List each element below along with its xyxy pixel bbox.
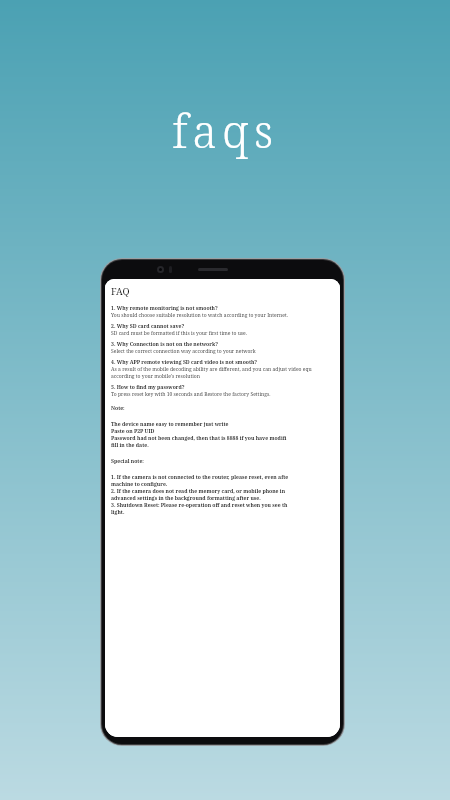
staticText: 4. Why APP remote viewing SD card video …: [111, 359, 258, 366]
staticText: 2. Why SD card cannot save?: [111, 323, 185, 330]
staticText: To press reset key with 10 seconds and R…: [111, 391, 271, 398]
staticText: As a result of the mobile decoding abili…: [111, 366, 312, 373]
staticText: Special note:: [111, 458, 144, 465]
staticText: Password had not been changed, then that…: [111, 435, 287, 442]
staticText: Paste on P2P UID: [111, 428, 155, 435]
staticText: advanced settings in the background form…: [111, 495, 261, 502]
staticText: according to your mobile's resolution: [111, 373, 200, 380]
staticText: 5. How to find my password?: [111, 384, 185, 391]
staticText: 3. Why Connection is not on the network?: [111, 341, 218, 348]
button[interactable]: faqs: [0, 100, 450, 161]
staticText: Select the correct connection way accord…: [111, 348, 256, 355]
staticText: machine to configure.: [111, 481, 168, 488]
staticText: The device name easy to remember just wr…: [111, 421, 229, 428]
staticText: faqs: [0, 100, 450, 161]
staticText: 1. If the camera is not connected to the…: [111, 474, 289, 481]
staticText: SD card must be formatted if this is you…: [111, 330, 247, 337]
staticText: 2. If the camera does not read the memor…: [111, 488, 286, 495]
staticText: FAQ: [111, 285, 130, 298]
staticText: Note:: [111, 405, 125, 412]
staticText: 3. Shutdown Reset: Please re-operation o…: [111, 502, 288, 509]
staticText: 1. Why remote monitoring is not smooth?: [111, 305, 218, 312]
staticText: fill in the date.: [111, 442, 149, 449]
button[interactable]: Phone preview showing FAQ screen: [100, 258, 345, 746]
staticText: light.: [111, 509, 125, 516]
staticText: You should choose suitable resolution to…: [111, 312, 288, 319]
